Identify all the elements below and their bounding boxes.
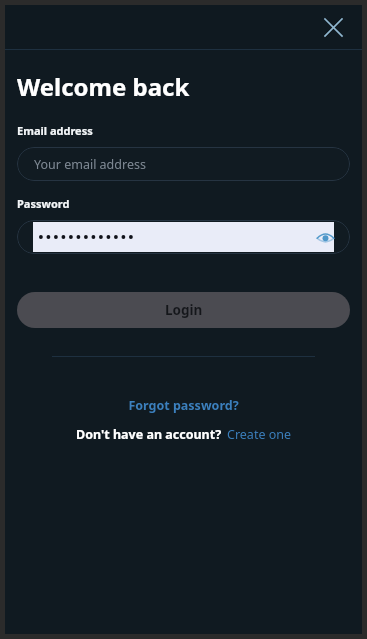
button[interactable]: Login <box>17 292 350 328</box>
button[interactable]: Show password <box>17 220 350 254</box>
button[interactable]: Your email address <box>17 147 350 181</box>
staticText: Welcome back <box>17 70 190 103</box>
staticText: Email address <box>17 123 93 138</box>
button[interactable]: Show password <box>312 224 338 250</box>
button[interactable]: Forgot password? <box>122 394 245 417</box>
button[interactable]: Close <box>316 10 350 44</box>
staticText: Password <box>17 196 70 211</box>
button[interactable]: Create one <box>227 426 292 443</box>
staticText: Your email address <box>34 156 146 173</box>
staticText: Forgot password? <box>128 397 239 414</box>
staticText: Don't have an account? <box>76 426 222 443</box>
staticText: Create one <box>227 426 292 443</box>
staticText: Login <box>165 301 203 319</box>
